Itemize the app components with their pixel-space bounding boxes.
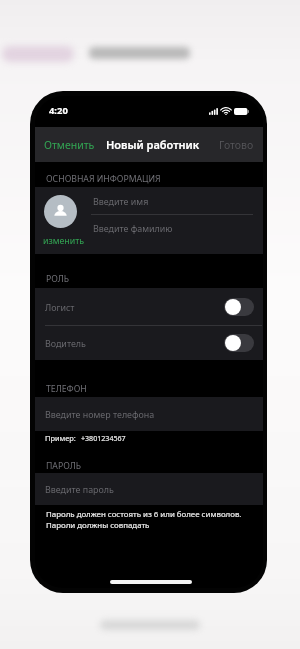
staticText: Пароли должны совпадать <box>46 520 150 531</box>
staticText: Введите имя <box>93 195 149 207</box>
staticText: Логист <box>45 301 75 313</box>
staticText: Отменить <box>44 138 95 152</box>
staticText: Пароль должен состоять из 6 или более си… <box>46 509 242 520</box>
staticText: Введите номер телефона <box>45 408 155 420</box>
staticText: ТЕЛЕФОН <box>46 383 87 395</box>
staticText: изменить <box>43 235 85 247</box>
staticText: ОСНОВНАЯ ИНФОРМАЦИЯ <box>46 173 161 185</box>
button[interactable]: Отменить <box>35 129 104 161</box>
staticText: Пример: <box>45 433 76 443</box>
staticText: Введите фамилию <box>93 222 173 234</box>
staticText: 4:20 <box>49 104 68 117</box>
button[interactable]: Водитель <box>35 326 263 360</box>
button[interactable]: Готово <box>210 129 263 161</box>
staticText: РОЛЬ <box>46 273 70 285</box>
staticText: ПАРОЛЬ <box>46 460 82 472</box>
staticText: Водитель <box>45 337 86 349</box>
staticText: +3801234567 <box>81 433 126 443</box>
button[interactable]: Введите пароль <box>35 473 263 505</box>
staticText: Введите пароль <box>45 483 114 495</box>
button[interactable]: Введите номер телефона <box>35 397 263 431</box>
button[interactable]: Изменить фото <box>43 194 83 251</box>
staticText: Новый работник <box>106 137 200 152</box>
staticText: Готово <box>219 138 254 152</box>
button[interactable]: Логист <box>35 288 263 325</box>
